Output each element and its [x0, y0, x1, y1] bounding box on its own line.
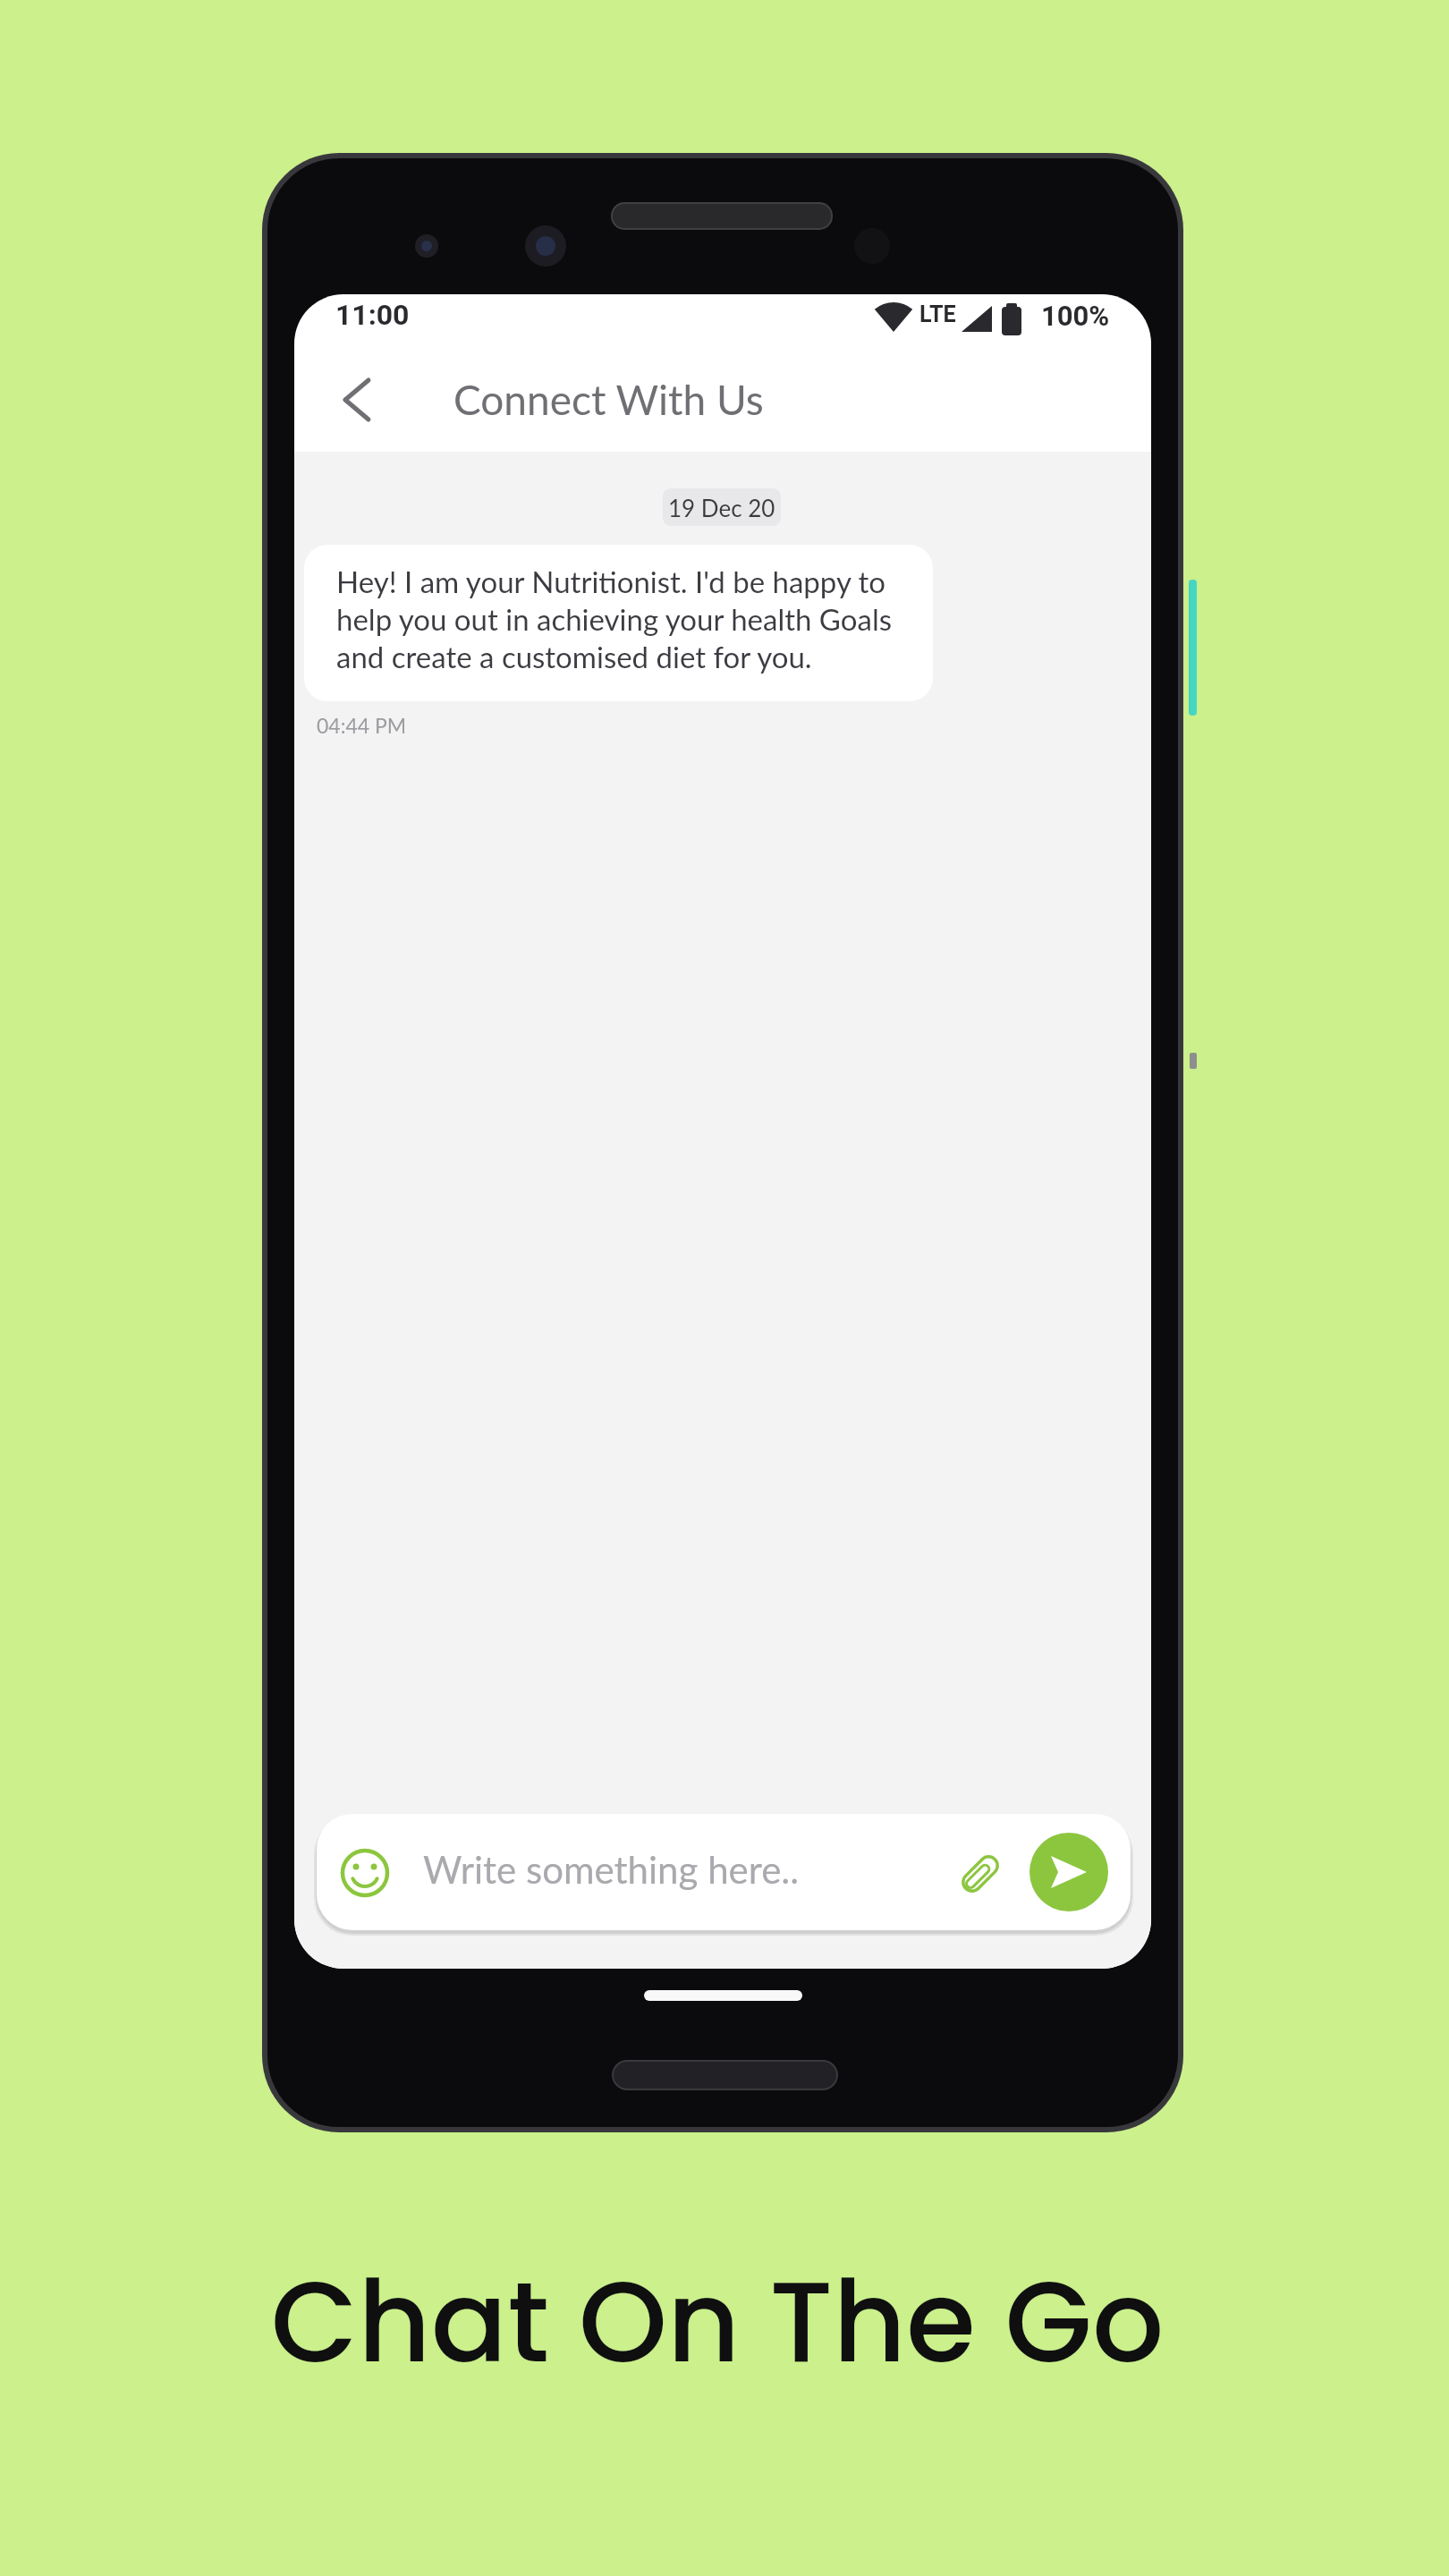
- staticText: 19 Dec 20: [668, 494, 775, 521]
- staticText: Write something here..: [423, 1847, 800, 1892]
- staticText: Hey! I am your Nutritionist. I'd be happ…: [336, 563, 892, 674]
- staticText: Connect With Us: [453, 375, 764, 424]
- staticText: 11:00: [335, 298, 410, 332]
- staticText: 04:44 PM: [317, 713, 407, 738]
- button[interactable]: [953, 1847, 1007, 1901]
- staticText: LTE: [919, 301, 956, 327]
- button[interactable]: [324, 362, 392, 437]
- button[interactable]: Write something here..: [317, 1814, 1131, 1930]
- staticText: Chat On The Go: [0, 2243, 1442, 2401]
- staticText: 100%: [1041, 300, 1110, 332]
- button[interactable]: [1030, 1833, 1108, 1911]
- button[interactable]: [341, 1849, 389, 1897]
